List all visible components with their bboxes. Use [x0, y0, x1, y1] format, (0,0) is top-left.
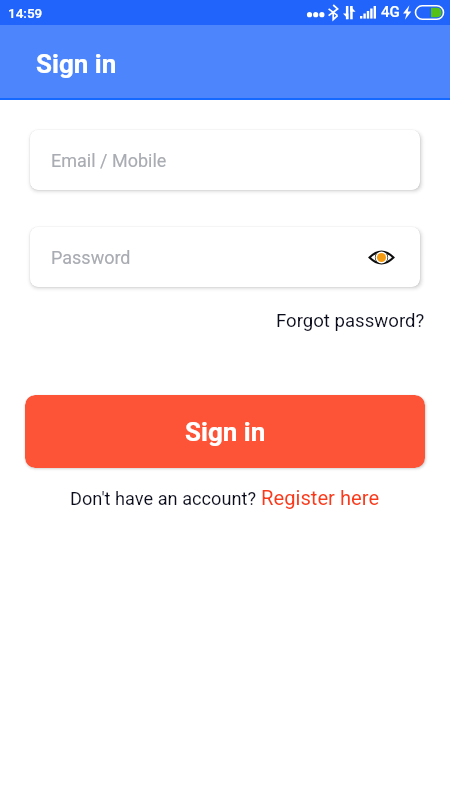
staticText: 4G: [381, 3, 400, 21]
staticText: 14:59: [8, 5, 43, 21]
button[interactable]: Email / Mobile: [30, 130, 420, 190]
button[interactable]: Show password: [366, 242, 396, 272]
staticText: Sign in: [36, 49, 117, 79]
button[interactable]: Sign in: [25, 395, 425, 468]
staticText: Don't have an account?: [70, 488, 261, 509]
staticText: Password: [51, 247, 131, 268]
button[interactable]: Forgot password?: [276, 310, 450, 332]
staticText: Email / Mobile: [51, 150, 167, 171]
button[interactable]: Password: [30, 227, 420, 287]
button[interactable]: Register here: [261, 486, 380, 510]
staticText: Sign in: [185, 417, 266, 447]
staticText: Forgot password?: [276, 310, 425, 332]
